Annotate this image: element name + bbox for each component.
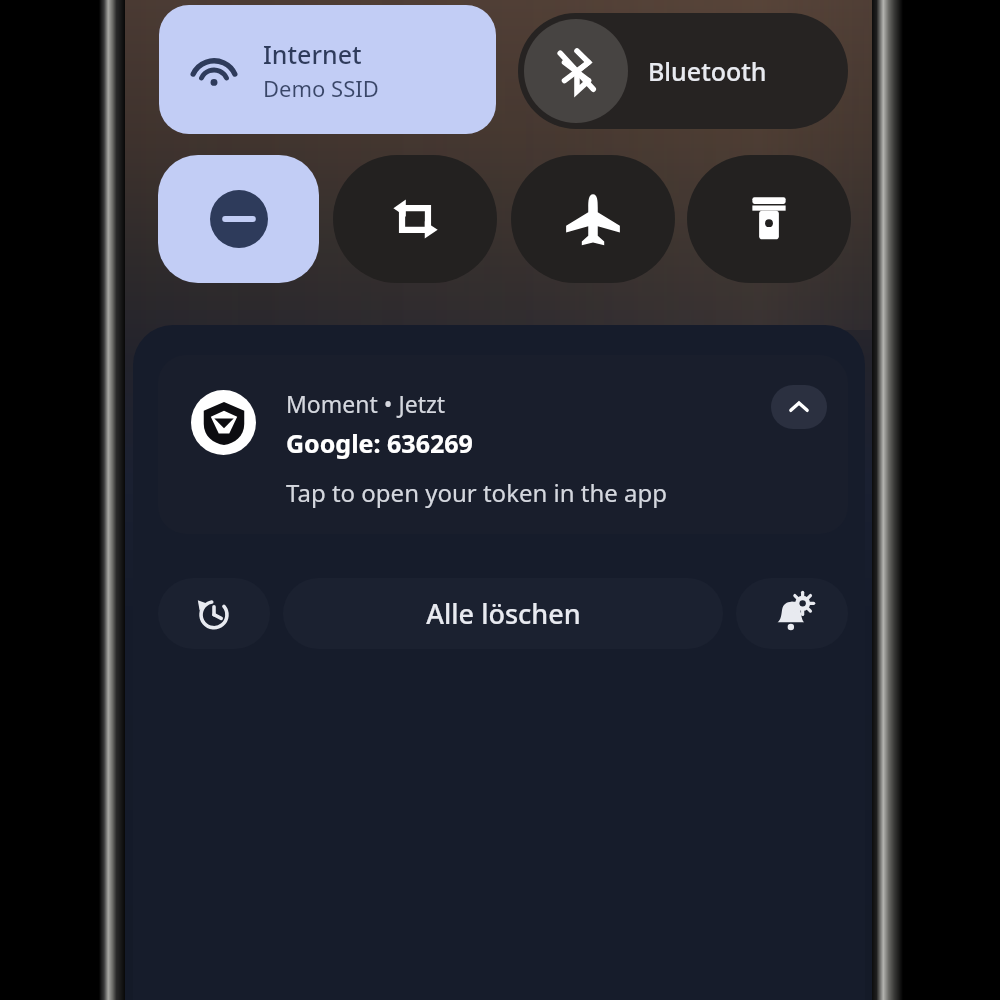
button[interactable]: Collapse notification [771,385,827,429]
staticText: Internet [263,37,362,71]
staticText: Moment • Jetzt [286,388,446,419]
button[interactable]: Notification history [158,578,270,649]
button[interactable]: Auto-rotate [333,155,497,283]
staticText: Demo SSID [263,73,379,103]
button[interactable]: Bluetooth [518,13,848,129]
button[interactable]: Do not disturb [158,155,319,283]
staticText: Alle löschen [426,595,581,632]
staticText: Google: 636269 [286,426,473,460]
button[interactable]: Notification settings [736,578,848,649]
button[interactable]: Alle löschen [283,578,723,649]
button[interactable]: Internet [159,5,496,134]
staticText: Bluetooth [648,54,767,88]
button[interactable]: Moment • Jetzt [158,355,848,534]
button[interactable]: Airplane mode [511,155,675,283]
button[interactable]: Flashlight [687,155,851,283]
staticText: Tap to open your token in the app [286,476,668,509]
